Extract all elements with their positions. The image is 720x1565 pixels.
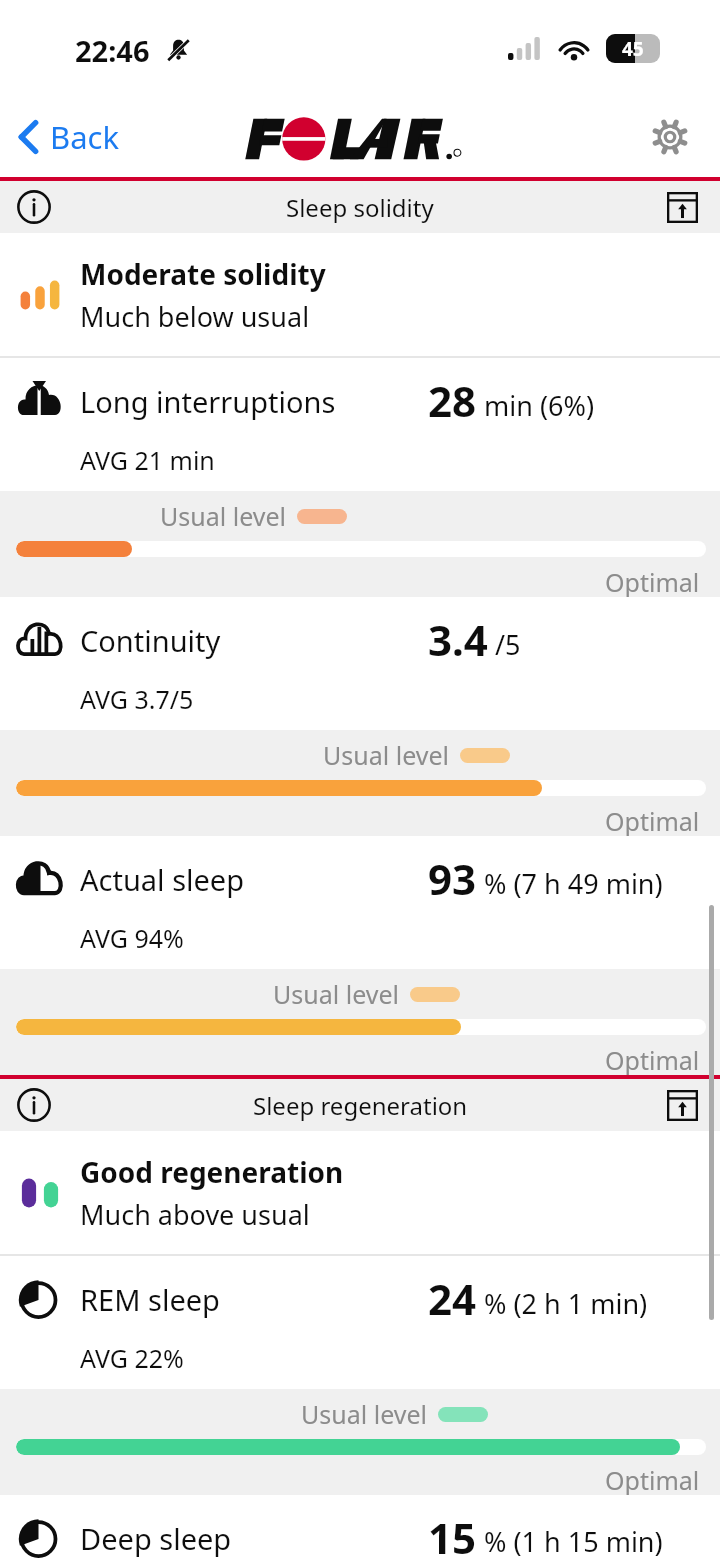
button[interactable]: Moderate solidity (0, 233, 720, 356)
staticText: 22:46 (75, 31, 150, 70)
staticText: REM sleep (80, 1280, 220, 1319)
staticText: Much above usual (80, 1196, 310, 1233)
staticText: Long interruptions (80, 382, 336, 421)
staticText: AVG 22% (80, 1341, 184, 1375)
button[interactable]: Actual sleep (0, 836, 720, 1075)
button[interactable]: Info (0, 1079, 720, 1131)
staticText: Deep sleep (80, 1519, 232, 1558)
staticText: Good regeneration (80, 1153, 344, 1191)
staticText: Usual level (301, 1397, 427, 1431)
staticText: Usual level (160, 499, 286, 533)
button[interactable]: Info (0, 181, 720, 233)
staticText: Sleep solidity (286, 191, 434, 224)
button[interactable]: Back (10, 106, 127, 168)
staticText: 28 (428, 372, 477, 429)
button[interactable]: Deep sleep (0, 1495, 720, 1565)
staticText: Moderate solidity (80, 255, 326, 293)
staticText: AVG 3.7/5 (80, 682, 194, 716)
staticText: AVG 21 min (80, 443, 215, 477)
staticText: AVG 94% (80, 921, 184, 955)
button[interactable]: REM sleep (0, 1256, 720, 1495)
staticText: Continuity (80, 621, 221, 660)
staticText: Optimal (605, 1463, 700, 1495)
staticText: min (6%) (477, 387, 595, 424)
staticText: Usual level (273, 977, 399, 1011)
button[interactable]: Good regeneration (0, 1131, 720, 1254)
button[interactable]: Expand section (660, 185, 704, 229)
staticText: Optimal (605, 804, 700, 836)
staticText: 3.4 (428, 611, 488, 668)
button[interactable]: Long interruptions (0, 358, 720, 597)
staticText: % (7 h 49 min) (477, 865, 663, 902)
staticText: 93 (428, 850, 477, 907)
staticText: Sleep regeneration (253, 1089, 468, 1122)
staticText: Optimal (605, 565, 700, 597)
staticText: /5 (488, 626, 521, 663)
button[interactable]: Info (12, 1083, 56, 1127)
staticText: 24 (428, 1270, 477, 1327)
button[interactable]: Expand section (660, 1083, 704, 1127)
staticText: % (2 h 1 min) (477, 1285, 648, 1322)
staticText: % (1 h 15 min) (477, 1523, 663, 1560)
button[interactable]: Continuity (0, 597, 720, 836)
staticText: Optimal (605, 1043, 700, 1075)
staticText: Back (50, 116, 119, 158)
button[interactable]: Settings (646, 113, 694, 161)
staticText: Usual level (323, 738, 449, 772)
staticText: Much below usual (80, 298, 310, 335)
button[interactable]: Info (12, 185, 56, 229)
staticText: 45 (622, 36, 644, 62)
staticText: 15 (428, 1509, 477, 1565)
staticText: Actual sleep (80, 860, 245, 899)
